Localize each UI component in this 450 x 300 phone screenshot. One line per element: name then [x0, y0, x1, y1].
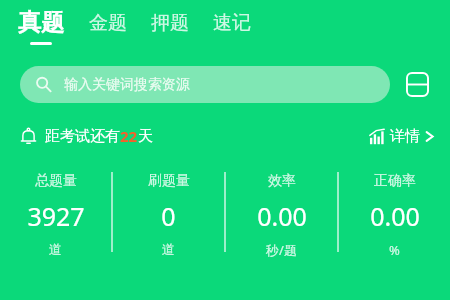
staticText: 刷题量	[148, 172, 190, 190]
button[interactable]: 押题	[151, 0, 189, 35]
staticText: 输入关键词搜索资源	[64, 76, 190, 94]
button[interactable]: 输入关键词搜索资源	[20, 66, 390, 103]
staticText: 金题	[89, 11, 127, 35]
staticText: 天	[138, 127, 153, 146]
button[interactable]: 距考试还有	[20, 126, 153, 146]
staticText: 距考试还有	[45, 127, 120, 146]
staticText: 0.00	[257, 199, 307, 233]
staticText: 效率	[268, 172, 296, 190]
staticText: 3927	[27, 199, 85, 233]
staticText: 速记	[213, 11, 251, 35]
staticText: 0	[161, 199, 176, 233]
staticText: 正确率	[374, 172, 416, 190]
button[interactable]: 真题	[18, 0, 64, 45]
staticText: %	[389, 241, 400, 259]
button[interactable]: Switch layout	[404, 71, 430, 97]
button[interactable]: 刷题量	[113, 172, 224, 257]
staticText: 押题	[151, 11, 189, 35]
staticText: 真题	[18, 8, 64, 37]
staticText: 0.00	[370, 199, 420, 233]
staticText: 总题量	[35, 172, 77, 190]
button[interactable]: 总题量	[0, 172, 111, 257]
button[interactable]: 效率	[226, 172, 337, 259]
staticText: 道	[162, 241, 175, 257]
button[interactable]: 正确率	[339, 172, 450, 259]
button[interactable]: 金题	[89, 0, 127, 35]
staticText: 详情	[390, 127, 420, 146]
staticText: 22	[120, 126, 138, 146]
button[interactable]: 详情	[369, 127, 436, 146]
button[interactable]: 速记	[213, 0, 251, 35]
staticText: 秒/题	[266, 241, 297, 259]
staticText: 道	[49, 241, 62, 257]
